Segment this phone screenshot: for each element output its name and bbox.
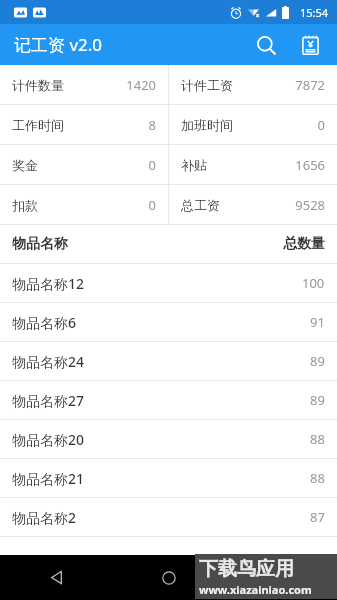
button[interactable]: 补贴: [169, 145, 337, 184]
staticText: 物品名称20: [12, 430, 85, 449]
button[interactable]: 扣款: [0, 185, 168, 224]
staticText: 记工资 v2.0: [14, 33, 103, 56]
staticText: 9528: [295, 196, 325, 214]
staticText: 物品名称6: [12, 313, 77, 332]
button[interactable]: 物品名称27: [0, 381, 337, 419]
button[interactable]: 加班时间: [169, 105, 337, 144]
button[interactable]: Back: [0, 555, 113, 600]
staticText: 工作时间: [12, 117, 64, 133]
staticText: 总工资: [181, 197, 220, 213]
staticText: 88: [310, 430, 325, 448]
button[interactable]: 物品名称24: [0, 342, 337, 380]
staticText: 1656: [295, 156, 325, 174]
staticText: 0: [148, 156, 156, 174]
button[interactable]: 物品名称20: [0, 420, 337, 458]
button[interactable]: 奖金: [0, 145, 168, 184]
staticText: 88: [310, 469, 325, 487]
staticText: 0: [317, 116, 325, 134]
staticText: 89: [310, 352, 325, 370]
staticText: 计件数量: [12, 77, 64, 93]
staticText: 物品名称12: [12, 274, 85, 293]
staticText: 扣款: [12, 197, 38, 213]
staticText: 物品名称24: [12, 352, 85, 371]
staticText: 下载鸟应用: [199, 557, 294, 581]
staticText: 7872: [295, 76, 325, 94]
staticText: 1420: [126, 76, 156, 94]
staticText: 物品名称21: [12, 469, 85, 488]
staticText: 15:54: [300, 5, 329, 20]
button[interactable]: 物品名称6: [0, 303, 337, 341]
staticText: 89: [310, 391, 325, 409]
staticText: 计件工资: [181, 77, 233, 93]
staticText: 100: [302, 274, 325, 292]
button[interactable]: Home: [113, 555, 225, 600]
staticText: www.xiazainiao.com: [199, 582, 312, 597]
staticText: 物品名称: [12, 235, 68, 253]
button[interactable]: 物品名称2: [0, 498, 337, 536]
button[interactable]: 物品名称12: [0, 264, 337, 302]
staticText: 物品名称2: [12, 508, 77, 527]
button[interactable]: 计件数量: [0, 65, 168, 104]
staticText: 总数量: [283, 235, 325, 253]
staticText: 加班时间: [181, 117, 233, 133]
staticText: 0: [148, 196, 156, 214]
staticText: 奖金: [12, 157, 38, 173]
button[interactable]: 工作时间: [0, 105, 168, 144]
staticText: 8: [148, 116, 156, 134]
staticText: 91: [310, 313, 325, 331]
button[interactable]: Search: [249, 28, 283, 62]
staticText: 补贴: [181, 157, 207, 173]
staticText: 物品名称27: [12, 391, 85, 410]
button[interactable]: 计件工资: [169, 65, 337, 104]
button[interactable]: 总工资: [169, 185, 337, 224]
button[interactable]: Records: [293, 28, 327, 62]
staticText: 87: [310, 508, 325, 526]
button[interactable]: Recents: [225, 555, 337, 600]
button[interactable]: 物品名称21: [0, 459, 337, 497]
